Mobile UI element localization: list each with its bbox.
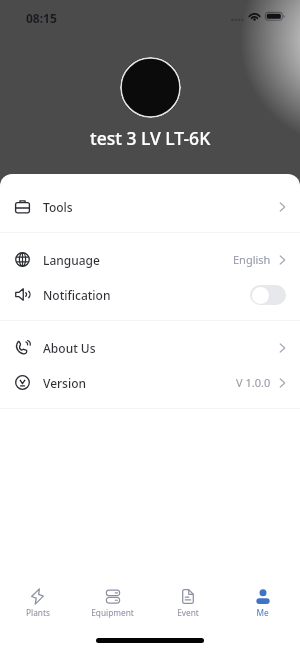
staticText: Plants	[26, 607, 50, 618]
button[interactable]: Notification	[0, 277, 300, 312]
staticText: About Us	[43, 340, 96, 356]
button[interactable]: Plants	[0, 573, 75, 618]
button[interactable]: Version	[0, 365, 300, 400]
staticText: Notification	[43, 287, 111, 303]
staticText: 08:15	[26, 10, 57, 26]
button[interactable]: Notification toggle	[250, 285, 286, 305]
staticText: test 3 LV LT-6K	[90, 126, 211, 150]
button[interactable]: Language	[0, 242, 300, 277]
staticText: Version	[43, 375, 87, 391]
staticText: Equipment	[91, 607, 134, 618]
button[interactable]: Profile photo	[120, 57, 181, 118]
button[interactable]: Event	[150, 573, 225, 618]
staticText: V 1.0.0	[236, 375, 271, 390]
staticText: Language	[43, 252, 100, 268]
button[interactable]: Tools	[0, 189, 300, 224]
staticText: English	[233, 252, 271, 267]
button[interactable]: Equipment	[75, 573, 150, 618]
staticText: Me	[256, 607, 269, 618]
staticText: Tools	[43, 199, 73, 215]
staticText: Event	[177, 607, 199, 618]
button[interactable]: Me	[225, 573, 300, 618]
button[interactable]: About Us	[0, 330, 300, 365]
